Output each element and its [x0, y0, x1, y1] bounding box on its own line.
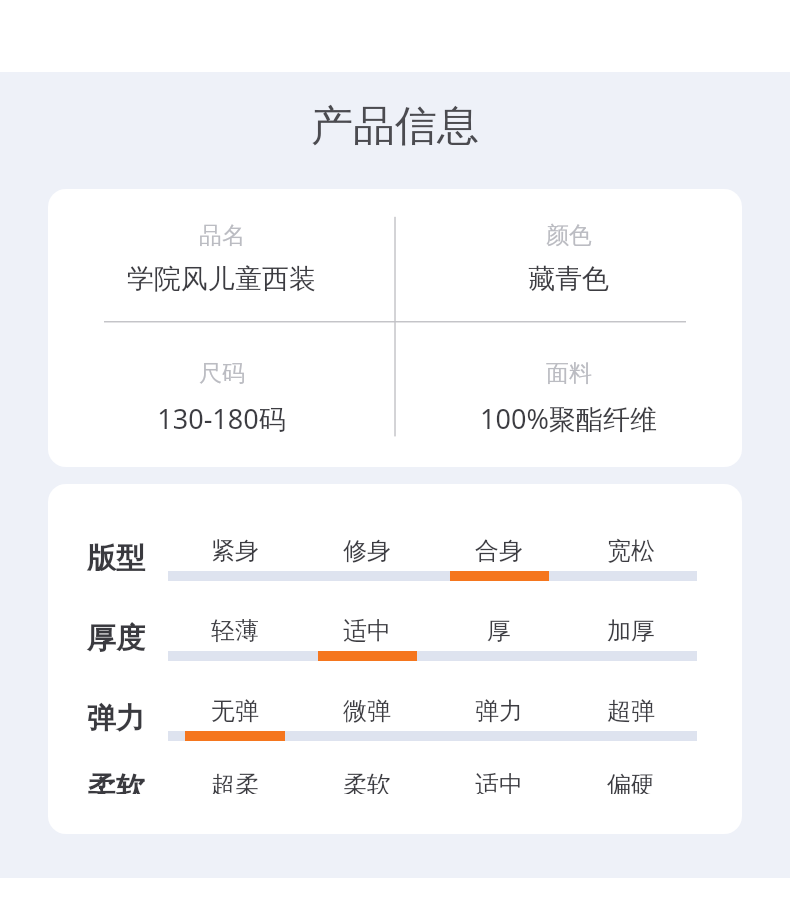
staticText: 弹力 [475, 696, 523, 726]
staticText: 超弹 [607, 696, 655, 726]
staticText: 学院风儿童西装 [127, 262, 316, 296]
staticText: 尺码 [199, 359, 245, 388]
button[interactable]: 面料 [395, 328, 742, 467]
button[interactable]: 版型 [48, 530, 742, 586]
staticText: 颜色 [546, 221, 592, 250]
staticText: 厚 [487, 616, 511, 646]
staticText: 宽松 [607, 536, 655, 566]
staticText: 弹力 [87, 700, 145, 737]
staticText: 藏青色 [528, 262, 609, 296]
staticText: 柔软 [87, 770, 145, 794]
staticText: 100%聚酯纤维 [480, 400, 657, 437]
button[interactable]: 弹力 [48, 690, 742, 746]
staticText: 版型 [87, 540, 145, 577]
staticText: 产品信息 [0, 100, 790, 153]
button[interactable]: 品名 [48, 189, 395, 328]
staticText: 适中 [343, 616, 391, 646]
staticText: 品名 [199, 221, 245, 250]
staticText: 紧身 [211, 536, 259, 566]
button[interactable]: 版型 [48, 484, 742, 834]
button[interactable]: 厚度 [48, 610, 742, 666]
button[interactable]: 尺码 [48, 328, 395, 467]
staticText: 轻薄 [211, 616, 259, 646]
staticText: 微弹 [343, 696, 391, 726]
staticText: 加厚 [607, 616, 655, 646]
staticText: 柔软 [343, 770, 391, 794]
staticText: 厚度 [87, 620, 145, 657]
staticText: 修身 [343, 536, 391, 566]
staticText: 超柔 [211, 770, 259, 794]
button[interactable]: 柔软 [48, 770, 742, 794]
staticText: 合身 [475, 536, 523, 566]
button[interactable]: 品名 [48, 189, 742, 467]
button[interactable]: 颜色 [395, 189, 742, 328]
staticText: 无弹 [211, 696, 259, 726]
staticText: 适中 [475, 770, 523, 794]
staticText: 面料 [546, 359, 592, 388]
staticText: 偏硬 [607, 770, 655, 794]
staticText: 130-180码 [157, 400, 286, 437]
